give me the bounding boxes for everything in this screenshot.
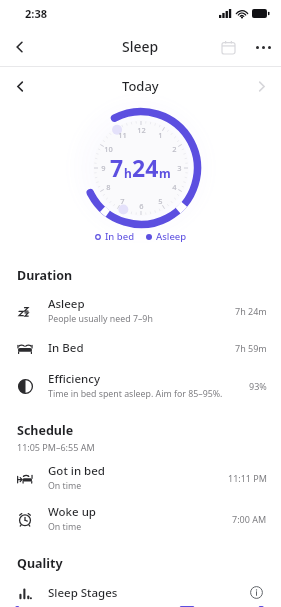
staticText: 10 — [104, 144, 113, 154]
staticText: Efficiency — [48, 371, 100, 387]
button[interactable]: Next day — [241, 67, 281, 105]
button[interactable]: Woke up — [0, 498, 281, 539]
staticText: People usually need 7–9h — [48, 313, 153, 325]
staticText: 9 — [101, 163, 106, 173]
staticText: Schedule — [17, 422, 74, 439]
button[interactable]: Sleep Stages — [0, 578, 281, 607]
staticText: 11:05 PM–6:55 AM — [17, 441, 95, 453]
staticText: 7 — [120, 196, 125, 206]
staticText: 7h 59m — [235, 342, 267, 354]
staticText: 4 — [172, 182, 177, 192]
staticText: 6 — [139, 201, 144, 211]
staticText: In bed — [105, 230, 135, 243]
staticText: 5 — [158, 196, 163, 206]
staticText: Woke up — [48, 504, 96, 520]
staticText: Asleep — [156, 230, 187, 243]
button[interactable]: In Bed — [0, 331, 281, 365]
staticText: In Bed — [48, 340, 84, 356]
staticText: On time — [48, 480, 82, 492]
staticText: 11:11 PM — [228, 472, 267, 484]
staticText: Quality — [17, 555, 63, 572]
staticText: 11 — [118, 130, 127, 140]
staticText: On time — [48, 521, 82, 533]
staticText: 1 — [158, 130, 163, 140]
staticText: Time in bed spent asleep. Aim for 85–95%… — [48, 388, 223, 400]
staticText: m — [159, 165, 171, 181]
staticText: Sleep — [122, 37, 159, 56]
button[interactable]: Calendar — [211, 30, 245, 64]
staticText: 12 — [137, 125, 146, 135]
button[interactable]: Asleep — [0, 290, 281, 331]
button[interactable]: Got in bed — [0, 457, 281, 498]
staticText: 3 — [177, 163, 182, 173]
staticText: 8 — [106, 182, 111, 192]
staticText: 2 — [172, 144, 177, 154]
staticText: Got in bed — [48, 463, 105, 479]
button[interactable]: More options — [245, 29, 281, 65]
button[interactable]: Efficiency — [0, 365, 281, 406]
staticText: Today — [122, 77, 159, 95]
staticText: 24 — [132, 152, 159, 183]
button[interactable]: Info — [245, 582, 267, 603]
staticText: 7h 24m — [235, 305, 267, 317]
staticText: Asleep — [48, 296, 85, 312]
staticText: 7:00 AM — [232, 513, 267, 525]
staticText: 93% — [249, 380, 267, 392]
staticText: Duration — [17, 267, 73, 284]
staticText: 2:38 — [25, 6, 47, 21]
staticText: Sleep Stages — [48, 585, 245, 601]
button[interactable]: Previous day — [0, 67, 40, 105]
staticText: h — [124, 165, 132, 181]
button[interactable]: Back — [0, 27, 40, 66]
staticText: 7 — [110, 152, 124, 183]
